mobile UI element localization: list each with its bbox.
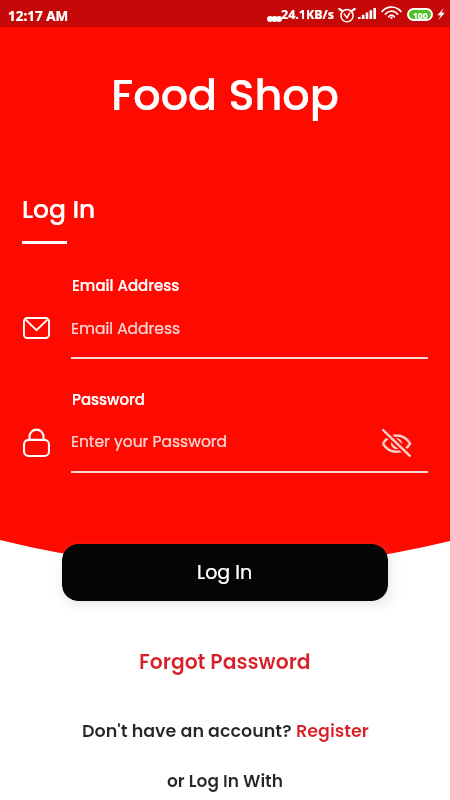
button[interactable]: Log In <box>62 544 388 601</box>
staticText: Enter your Password <box>71 431 228 453</box>
button[interactable]: Forgot Password <box>139 648 311 676</box>
staticText: Food Shop <box>0 65 450 125</box>
staticText: 12:17 AM <box>8 7 69 25</box>
staticText: Register <box>296 719 369 744</box>
button[interactable]: Show password <box>381 428 412 458</box>
staticText: Log In <box>22 192 96 227</box>
staticText: Password <box>72 389 145 410</box>
staticText: Email Address <box>71 318 181 340</box>
staticText: Don't have an account? <box>82 719 296 744</box>
staticText: or Log In With <box>167 769 283 793</box>
staticText: Log In <box>197 559 253 586</box>
staticText: Forgot Password <box>139 648 311 676</box>
button[interactable]: Register <box>296 719 369 744</box>
staticText: 100 <box>413 10 428 19</box>
staticText: Email Address <box>72 275 180 296</box>
staticText: 24.1KB/s <box>281 6 335 23</box>
